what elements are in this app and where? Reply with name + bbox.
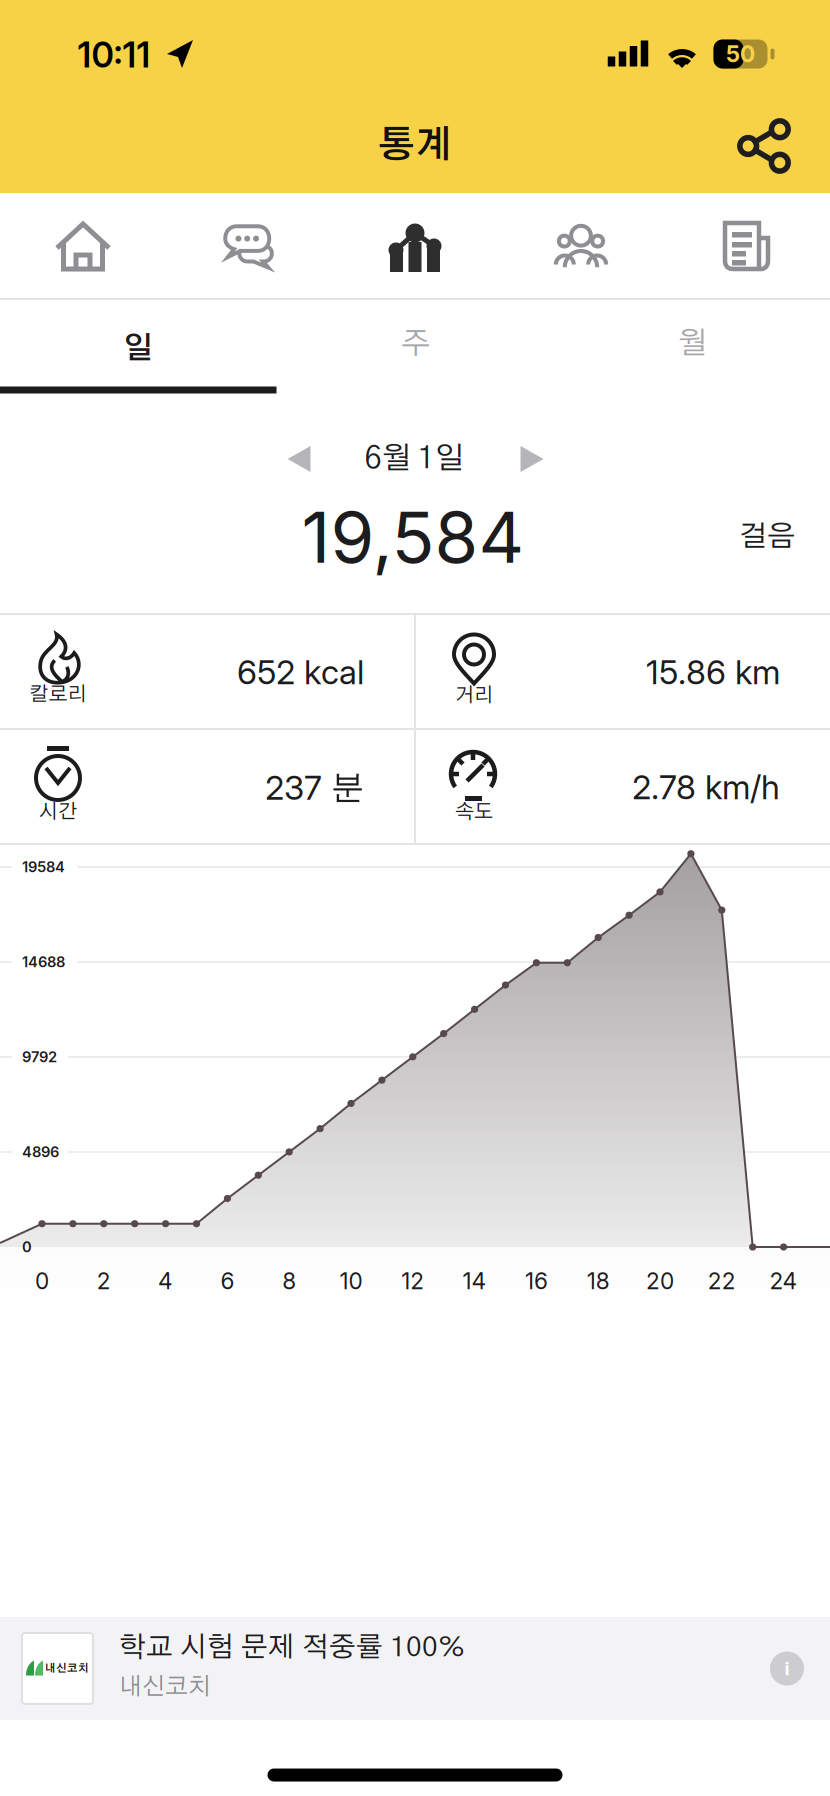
button[interactable]: Next day <box>496 423 568 495</box>
staticText: 일 <box>123 334 153 364</box>
staticText: 걸음 <box>739 522 795 552</box>
staticText: 2 <box>97 1267 111 1295</box>
button[interactable]: 월 <box>554 300 830 394</box>
staticText: 10 <box>339 1267 362 1295</box>
staticText: 18 <box>587 1267 610 1295</box>
staticText: 50 <box>726 40 755 68</box>
staticText: 19,584 <box>301 494 524 580</box>
staticText: 월 <box>677 329 706 359</box>
staticText: 24 <box>770 1267 798 1295</box>
staticText: 14 <box>463 1267 487 1295</box>
staticText: 6월 1일 <box>364 444 463 474</box>
button[interactable]: 시간 <box>0 730 414 843</box>
staticText: 652 kcal <box>237 652 364 692</box>
staticText: 주 <box>401 329 430 359</box>
staticText: 10:11 <box>77 34 150 76</box>
staticText: 시간 <box>39 802 77 822</box>
staticText: 칼로리 <box>29 684 86 704</box>
button[interactable]: 속도 <box>416 730 830 843</box>
staticText: 22 <box>708 1267 736 1295</box>
staticText: 학교 시험 문제 적중률 100% <box>119 1634 465 1662</box>
button[interactable]: Home <box>0 193 166 299</box>
button[interactable]: 내신코치 <box>0 1617 830 1720</box>
staticText: 속도 <box>455 802 493 822</box>
button[interactable]: Share <box>718 100 810 192</box>
button[interactable]: News <box>664 193 830 299</box>
staticText: 8 <box>282 1267 296 1295</box>
button[interactable]: Statistics <box>332 193 498 299</box>
staticText: 9792 <box>22 1048 57 1066</box>
staticText: 내신코치 <box>45 1663 89 1674</box>
staticText: 237 분 <box>265 766 364 808</box>
staticText: 통계 <box>378 127 452 165</box>
staticText: 14688 <box>22 953 65 971</box>
staticText: 2.78 km/h <box>632 767 780 807</box>
staticText: 16 <box>525 1267 548 1295</box>
button[interactable]: 거리 <box>416 615 830 728</box>
staticText: 4 <box>158 1267 173 1295</box>
button[interactable]: Chat <box>166 193 332 299</box>
staticText: 19584 <box>22 858 65 876</box>
staticText: 20 <box>646 1267 674 1295</box>
button[interactable]: Friends <box>498 193 664 299</box>
button[interactable]: 주 <box>277 300 554 394</box>
staticText: 4896 <box>22 1143 59 1161</box>
staticText: i <box>784 1657 789 1680</box>
staticText: 0 <box>22 1238 32 1256</box>
button[interactable]: 칼로리 <box>0 615 414 728</box>
staticText: 0 <box>35 1267 49 1295</box>
staticText: 6 <box>220 1267 234 1295</box>
staticText: 15.86 km <box>646 652 780 692</box>
staticText: 12 <box>401 1267 424 1295</box>
button[interactable]: 일 <box>0 300 277 394</box>
staticText: 내신코치 <box>119 1675 211 1699</box>
staticText: 거리 <box>455 685 493 705</box>
button[interactable]: Previous day <box>263 423 335 495</box>
